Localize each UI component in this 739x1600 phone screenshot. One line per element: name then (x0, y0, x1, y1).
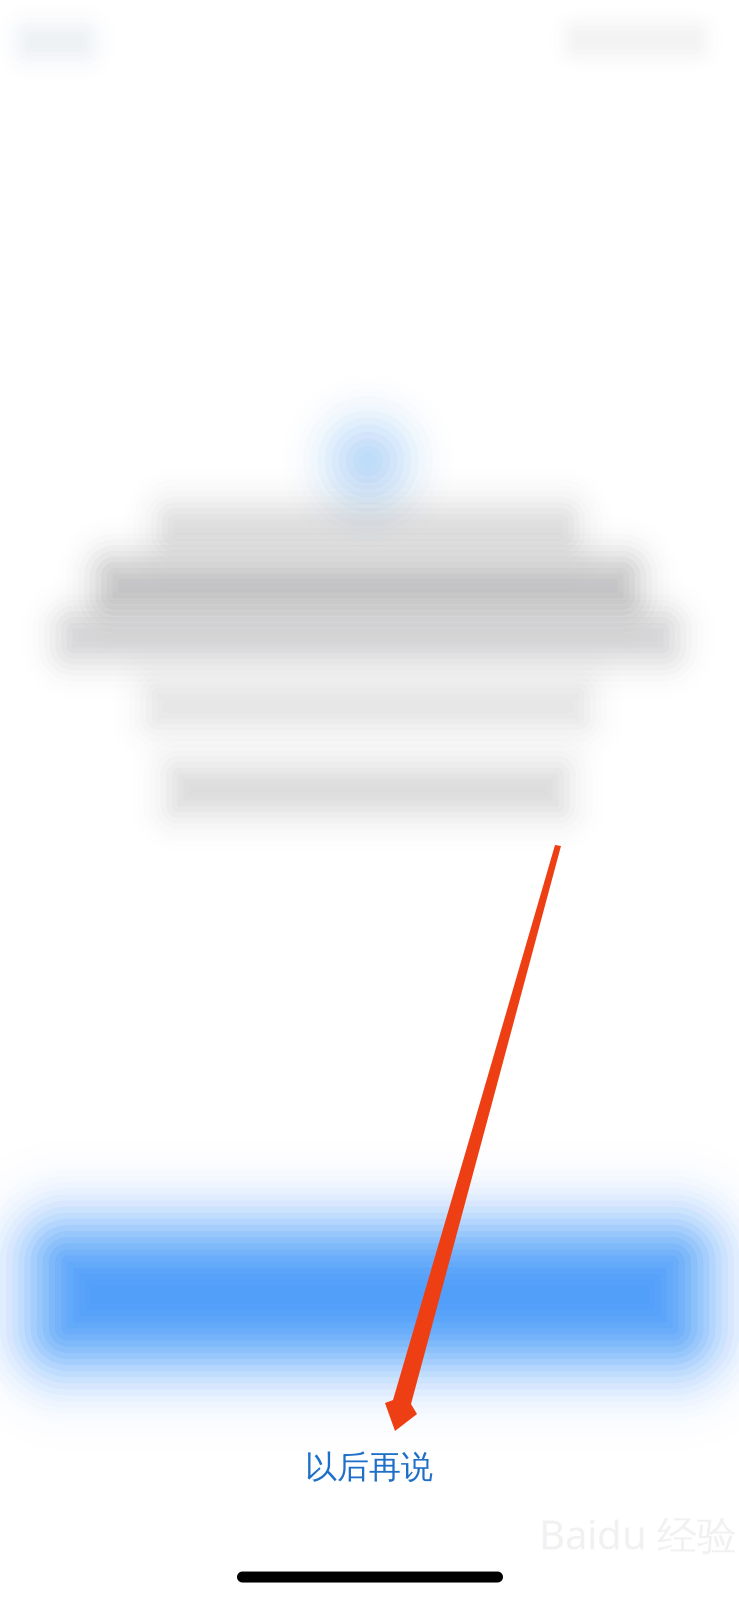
button[interactable]: 开启 (0, 0, 739, 1600)
staticText: Baidu 经验 (539, 1507, 737, 1561)
button[interactable]: 以后再说 (219, 1440, 519, 1494)
staticText: 以后再说 (305, 1447, 433, 1487)
